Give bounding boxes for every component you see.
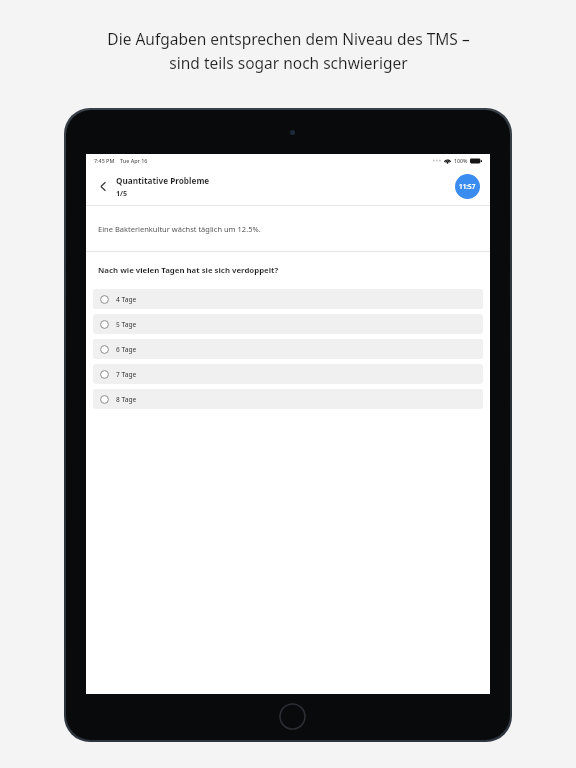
staticText: 4 Tage	[116, 295, 137, 304]
staticText: 1/5	[116, 188, 128, 198]
button[interactable]: 6 Tage	[93, 339, 483, 359]
button[interactable]: 4 Tage	[93, 289, 483, 309]
staticText: 11:57	[459, 182, 476, 191]
button[interactable]: 8 Tage	[93, 389, 483, 409]
staticText: 5 Tage	[116, 320, 137, 329]
button[interactable]: 7 Tage	[93, 364, 483, 384]
staticText: 6 Tage	[116, 345, 137, 354]
staticText: 100%	[454, 157, 468, 164]
staticText: Nach wie vielen Tagen hat sie sich verdo…	[98, 265, 279, 276]
staticText: 7 Tage	[116, 370, 137, 379]
button[interactable]: Zurück	[94, 177, 112, 195]
staticText: Tue Apr 16	[120, 157, 148, 164]
staticText: 7:45 PM	[94, 157, 115, 164]
other: Home	[279, 703, 306, 730]
staticText: Eine Bakterienkultur wächst täglich um 1…	[98, 224, 261, 234]
staticText: sind teils sogar noch schwieriger	[169, 52, 408, 73]
button[interactable]: 11:57	[455, 174, 480, 199]
staticText: 8 Tage	[116, 395, 137, 404]
button[interactable]: 5 Tage	[93, 314, 483, 334]
staticText: Die Aufgaben entsprechen dem Niveau des …	[107, 28, 470, 49]
staticText: Quantitative Probleme	[116, 175, 210, 186]
